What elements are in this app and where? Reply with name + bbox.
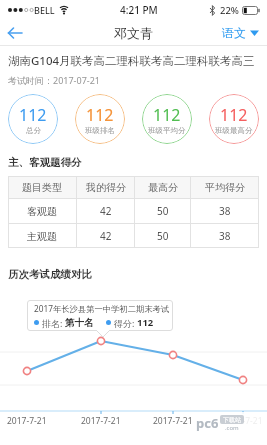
staticText: 38: [219, 229, 231, 243]
staticText: 38: [219, 204, 231, 218]
staticText: .com: [225, 424, 239, 432]
staticText: 42: [100, 229, 112, 243]
staticText: 2017-7-21: [223, 415, 263, 427]
staticText: 班级最高分: [215, 126, 253, 135]
staticText: 2017-7-21: [7, 415, 47, 427]
staticText: 112: [86, 104, 114, 126]
staticText: 50: [157, 204, 169, 218]
button[interactable]: 112: [142, 94, 192, 144]
staticText: 最高分: [148, 181, 178, 194]
button[interactable]: 112: [75, 94, 125, 144]
staticText: 历次考试成绩对比: [8, 268, 92, 281]
staticText: 题目类型: [22, 181, 62, 194]
staticText: 平均得分: [205, 181, 245, 194]
staticText: 邓文青: [114, 25, 153, 41]
staticText: 下载站: [223, 416, 241, 424]
staticText: 主观题: [27, 230, 57, 243]
staticText: 第十名: [65, 317, 94, 329]
staticText: 112: [19, 104, 47, 126]
staticText: 得分:: [114, 317, 137, 329]
staticText: 班级平均分: [148, 126, 186, 135]
staticText: 我的得分: [86, 181, 126, 194]
staticText: 排名:: [42, 317, 65, 329]
staticText: 班级排名: [85, 126, 115, 135]
button[interactable]: 112: [209, 94, 259, 144]
button[interactable]: [0, 20, 30, 45]
staticText: 2017-7-21: [81, 415, 121, 427]
staticText: 总分: [26, 126, 41, 135]
staticText: 湖南G104月联考高二理科联考高二理科联考高三: [8, 53, 255, 69]
staticText: 42: [100, 204, 112, 218]
staticText: 112: [220, 104, 248, 126]
staticText: 考试时间：2017-07-21: [8, 74, 100, 86]
staticText: 2017年长沙县第一中学初二期末考试: [34, 303, 170, 314]
staticText: 4:21 PM: [120, 3, 158, 17]
button[interactable]: 语文: [222, 25, 259, 40]
staticText: 50: [157, 229, 169, 243]
staticText: 主、客观题得分: [8, 156, 82, 169]
staticText: pc6: [196, 414, 219, 432]
staticText: 语文: [222, 25, 246, 40]
staticText: 22%: [220, 4, 239, 17]
staticText: 112: [137, 316, 154, 329]
staticText: 2017-7-21: [153, 415, 193, 427]
staticText: 112: [153, 104, 181, 126]
staticText: 客观题: [27, 205, 57, 218]
button[interactable]: 2017年长沙县第一中学初二期末考试: [27, 300, 173, 331]
staticText: BELL: [34, 4, 55, 16]
button[interactable]: 112: [8, 94, 58, 144]
